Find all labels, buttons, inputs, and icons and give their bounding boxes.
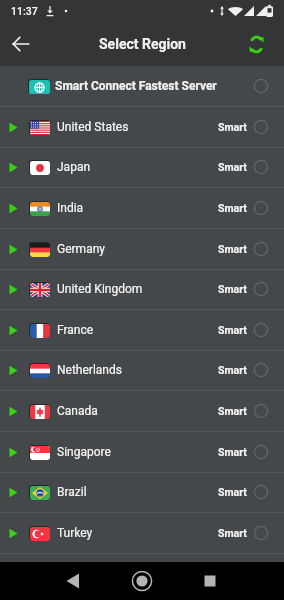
button[interactable]: Germany [0,229,284,270]
staticText: Smart [218,283,247,295]
button[interactable]: France [0,310,284,351]
staticText: United Kingdom [57,282,143,296]
button[interactable]: Brazil [0,472,284,513]
staticText: France [57,323,94,337]
button[interactable]: India [0,188,284,229]
staticText: India [57,201,84,215]
staticText: Japan [57,160,91,174]
button[interactable]: Turkey [0,513,284,554]
button[interactable]: Back [0,22,41,66]
staticText: Smart [218,121,247,133]
button[interactable]: Singapore [0,432,284,473]
staticText: Germany [57,242,105,256]
staticText: Turkey [57,526,93,540]
staticText: United States [57,120,129,134]
staticText: Smart [218,527,247,539]
button[interactable]: Home [119,562,165,600]
staticText: Smart [218,486,247,498]
staticText: Brazil [57,485,87,499]
button[interactable]: Japan [0,147,284,188]
button[interactable]: Recent apps [187,562,233,600]
button[interactable]: Refresh [240,22,284,66]
button[interactable]: United Kingdom [0,269,284,310]
staticText: Smart [218,243,247,255]
button[interactable]: Canada [0,391,284,432]
button[interactable]: United States [0,107,284,148]
staticText: Smart [218,202,247,214]
staticText: Smart [218,161,247,173]
staticText: Select Region [99,36,186,52]
staticText: Canada [57,404,98,418]
staticText: Netherlands [57,363,122,377]
staticText: Smart Connect Fastest Server [55,79,217,93]
button[interactable]: Back [50,562,96,600]
button[interactable]: Smart Connect Fastest Server [0,66,284,107]
staticText: Smart [218,324,247,336]
staticText: 11:37 [11,5,38,17]
button[interactable]: Netherlands [0,350,284,391]
staticText: Smart [218,446,247,458]
staticText: Smart [218,405,247,417]
staticText: Smart [218,364,247,376]
staticText: Singapore [57,445,111,459]
